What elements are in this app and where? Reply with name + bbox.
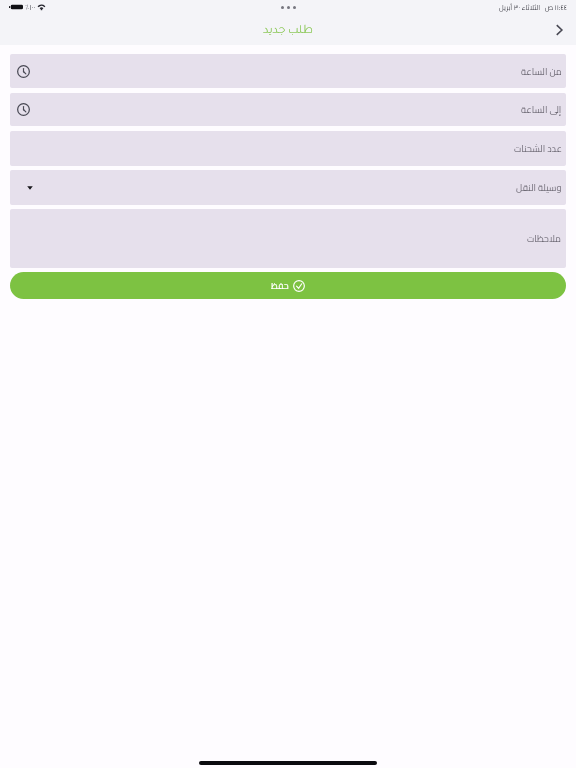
button[interactable]: ملاحظات: [10, 209, 566, 268]
button[interactable]: وسيلة النقل: [10, 170, 566, 205]
button[interactable]: إلى الساعة: [10, 93, 566, 126]
button[interactable]: من الساعة: [10, 54, 566, 88]
button[interactable]: عدد الشحنات: [10, 131, 566, 166]
staticText: ١١:٤٤ ص الثلاثاء ٣٠ أبريل: [499, 1, 567, 14]
staticText: وسيلة النقل: [516, 179, 562, 196]
staticText: حفظ: [271, 278, 289, 294]
staticText: طلب جديد: [263, 25, 313, 37]
button[interactable]: Back: [542, 14, 576, 45]
staticText: ٪١٠٠: [25, 0, 36, 14]
staticText: ملاحظات: [527, 230, 562, 247]
staticText: من الساعة: [521, 63, 562, 80]
staticText: عدد الشحنات: [514, 140, 562, 157]
staticText: إلى الساعة: [521, 101, 562, 118]
button[interactable]: حفظ: [10, 272, 566, 299]
